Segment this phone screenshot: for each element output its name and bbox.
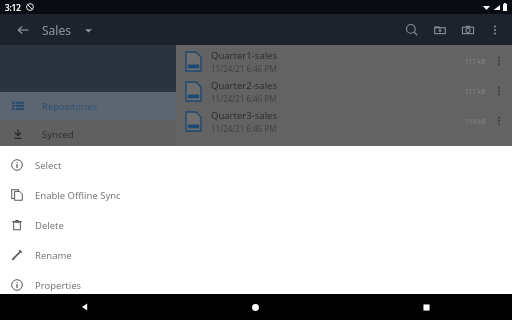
- button[interactable]: Sales: [42, 22, 92, 38]
- staticText: 11/24/21 6:46 PM: [211, 123, 277, 134]
- staticText: 11/24/21 6:46 PM: [211, 93, 277, 104]
- button[interactable]: Create folder: [426, 16, 454, 44]
- staticText: Repositories: [42, 100, 98, 113]
- button[interactable]: File options: [486, 76, 512, 106]
- staticText: Quarter2-sales: [211, 79, 277, 92]
- staticText: Select: [35, 159, 62, 172]
- staticText: Properties: [35, 279, 82, 292]
- button[interactable]: Synced: [0, 120, 176, 148]
- button[interactable]: Enable Offline Sync: [0, 180, 512, 210]
- button[interactable]: Delete: [0, 210, 512, 240]
- button[interactable]: Back: [8, 15, 38, 45]
- button[interactable]: Camera: [454, 16, 482, 44]
- staticText: 11/24/21 6:46 PM: [211, 63, 277, 74]
- staticText: Delete: [35, 219, 64, 232]
- staticText: Rename: [35, 249, 72, 262]
- button[interactable]: Back: [0, 294, 170, 320]
- button[interactable]: Rename: [0, 240, 512, 270]
- staticText: 117 kB: [465, 57, 486, 66]
- staticText: Quarter1-sales: [211, 49, 277, 62]
- button[interactable]: Home: [170, 294, 341, 320]
- button[interactable]: Quarter1-sales: [176, 46, 512, 76]
- button[interactable]: Properties: [0, 270, 512, 300]
- button[interactable]: Recents: [341, 294, 512, 320]
- staticText: 117 kB: [465, 87, 486, 96]
- button[interactable]: More options: [482, 17, 508, 43]
- button[interactable]: Select: [0, 150, 512, 180]
- staticText: Quarter3-sales: [211, 109, 277, 122]
- button[interactable]: Quarter3-sales: [176, 106, 512, 136]
- button[interactable]: Search: [398, 16, 426, 44]
- button[interactable]: File options: [486, 46, 512, 76]
- button[interactable]: Repositories: [0, 92, 176, 120]
- button[interactable]: File options: [486, 106, 512, 136]
- staticText: 119 kB: [465, 117, 486, 126]
- staticText: 3:12: [5, 2, 21, 13]
- staticText: Sales: [42, 22, 71, 38]
- button[interactable]: Quarter2-sales: [176, 76, 512, 106]
- staticText: Synced: [42, 128, 74, 141]
- staticText: Enable Offline Sync: [35, 189, 121, 202]
